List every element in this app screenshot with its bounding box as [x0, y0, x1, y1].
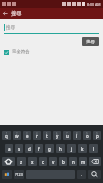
staticText: 4	[36, 132, 38, 136]
button[interactable]: d	[25, 144, 33, 153]
button[interactable]: n	[69, 157, 77, 166]
button[interactable]: Backspace	[89, 157, 101, 166]
button[interactable]: v	[49, 157, 57, 166]
staticText: 0	[96, 132, 98, 136]
button[interactable]: 7	[63, 131, 71, 140]
staticText: u	[66, 133, 69, 139]
button[interactable]: 3	[23, 131, 31, 140]
staticText: m	[81, 159, 86, 165]
button[interactable]: 8	[73, 131, 81, 140]
staticText: 9	[86, 132, 88, 136]
staticText: g	[48, 146, 51, 152]
button[interactable]: x	[28, 157, 37, 166]
staticText: 3	[26, 132, 28, 136]
staticText: f	[38, 146, 40, 152]
staticText: n	[72, 159, 75, 165]
staticText: v	[52, 159, 55, 165]
button[interactable]: l	[89, 144, 98, 153]
button[interactable]: z	[17, 157, 26, 166]
button[interactable]: g	[45, 144, 54, 153]
button[interactable]: Search	[88, 170, 101, 179]
staticText: y	[56, 133, 59, 139]
staticText: 6	[56, 132, 58, 136]
button[interactable]: b	[59, 157, 67, 166]
button[interactable]: Shift	[2, 157, 15, 166]
button[interactable]: Switch input method	[2, 170, 12, 179]
staticText: 7	[66, 132, 68, 136]
staticText: p	[96, 133, 99, 139]
button[interactable]: .	[77, 170, 86, 179]
button[interactable]: Back	[0, 8, 11, 19]
button[interactable]: 4	[33, 131, 41, 140]
staticText: c	[42, 159, 45, 165]
staticText: i	[76, 133, 78, 139]
button[interactable]: 9	[83, 131, 91, 140]
staticText: a	[8, 146, 11, 152]
staticText: e	[26, 133, 29, 139]
staticText: z	[20, 159, 23, 165]
staticText: 搜尋	[86, 39, 95, 44]
staticText: d	[28, 146, 31, 152]
staticText: 搜尋	[6, 25, 16, 31]
staticText: 8:00 AM	[87, 2, 101, 7]
staticText: .	[81, 172, 83, 178]
staticText: r	[36, 133, 38, 139]
button[interactable]: 0	[93, 131, 101, 140]
button[interactable]: m	[79, 157, 87, 166]
staticText: 2	[16, 132, 18, 136]
button[interactable]: 5	[43, 131, 51, 140]
staticText: ?123	[15, 172, 23, 177]
staticText: x	[31, 159, 34, 165]
button[interactable]: h	[56, 144, 65, 153]
staticText: l	[93, 146, 95, 152]
button[interactable]: 完全符合	[0, 49, 103, 55]
button[interactable]: 搜尋	[4, 24, 99, 34]
button[interactable]: 搜尋	[82, 37, 99, 46]
staticText: j	[71, 146, 73, 152]
button[interactable]: k	[78, 144, 87, 153]
button[interactable]: 2	[13, 131, 21, 140]
staticText: 1	[6, 132, 8, 136]
button[interactable]: a	[5, 144, 13, 153]
staticText: k	[81, 146, 84, 152]
staticText: w	[15, 133, 19, 139]
button[interactable]: s	[15, 144, 23, 153]
button[interactable]: ?123	[14, 170, 24, 179]
staticText: b	[62, 159, 65, 165]
staticText: o	[86, 133, 89, 139]
staticText: t	[46, 133, 48, 139]
button[interactable]: c	[39, 157, 47, 166]
button[interactable]: f	[35, 144, 43, 153]
staticText: 5	[46, 132, 48, 136]
staticText: q	[5, 133, 8, 139]
staticText: 8	[76, 132, 78, 136]
staticText: h	[59, 146, 62, 152]
staticText: 搜尋	[11, 10, 22, 17]
staticText: 完全符合	[12, 49, 30, 55]
button[interactable]: j	[67, 144, 76, 153]
staticText: s	[18, 146, 21, 152]
button[interactable]: 1	[2, 131, 11, 140]
button[interactable]: 6	[53, 131, 61, 140]
